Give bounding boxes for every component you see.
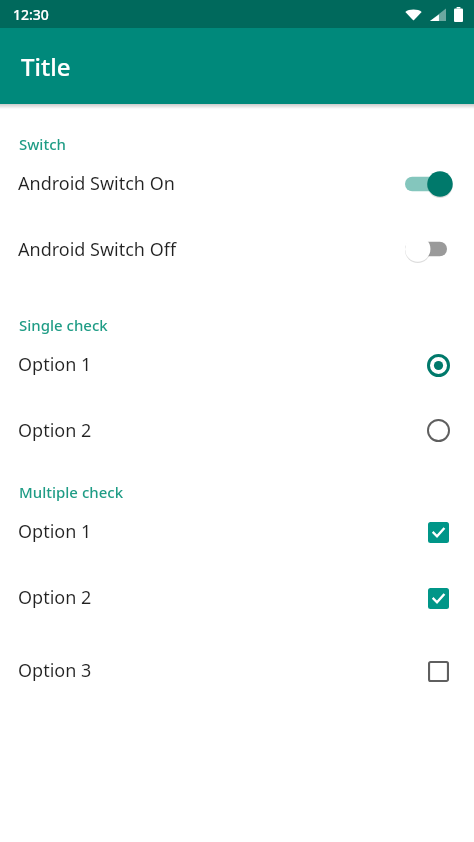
- staticText: Option 1: [18, 352, 421, 377]
- staticText: Option 2: [18, 585, 421, 610]
- button[interactable]: Option 2: [0, 394, 474, 466]
- button[interactable]: Android Switch On: [0, 154, 474, 213]
- button[interactable]: Checked option: [421, 515, 455, 549]
- staticText: Option 1: [18, 519, 421, 544]
- staticText: Android Switch On: [18, 171, 405, 196]
- button[interactable]: Unchecked option: [421, 654, 455, 688]
- button[interactable]: Option 3: [0, 634, 474, 707]
- staticText: Single check: [19, 315, 474, 335]
- button[interactable]: Selected option: [421, 348, 455, 382]
- staticText: Switch: [19, 134, 474, 154]
- button[interactable]: Checked option: [421, 581, 455, 615]
- button[interactable]: Unselected option: [421, 413, 455, 447]
- button[interactable]: Android Switch Off: [0, 213, 474, 285]
- staticText: Android Switch Off: [18, 237, 405, 262]
- button[interactable]: Switch on: [405, 171, 455, 197]
- staticText: Option 2: [18, 418, 421, 443]
- staticText: Multiple check: [19, 482, 474, 502]
- button[interactable]: Option 2: [0, 561, 474, 634]
- staticText: Option 3: [18, 658, 421, 683]
- staticText: 12:30: [13, 5, 49, 24]
- button[interactable]: Option 1: [0, 335, 474, 394]
- button[interactable]: Switch off: [405, 236, 455, 262]
- button[interactable]: Option 1: [0, 502, 474, 561]
- staticText: Title: [21, 50, 71, 83]
